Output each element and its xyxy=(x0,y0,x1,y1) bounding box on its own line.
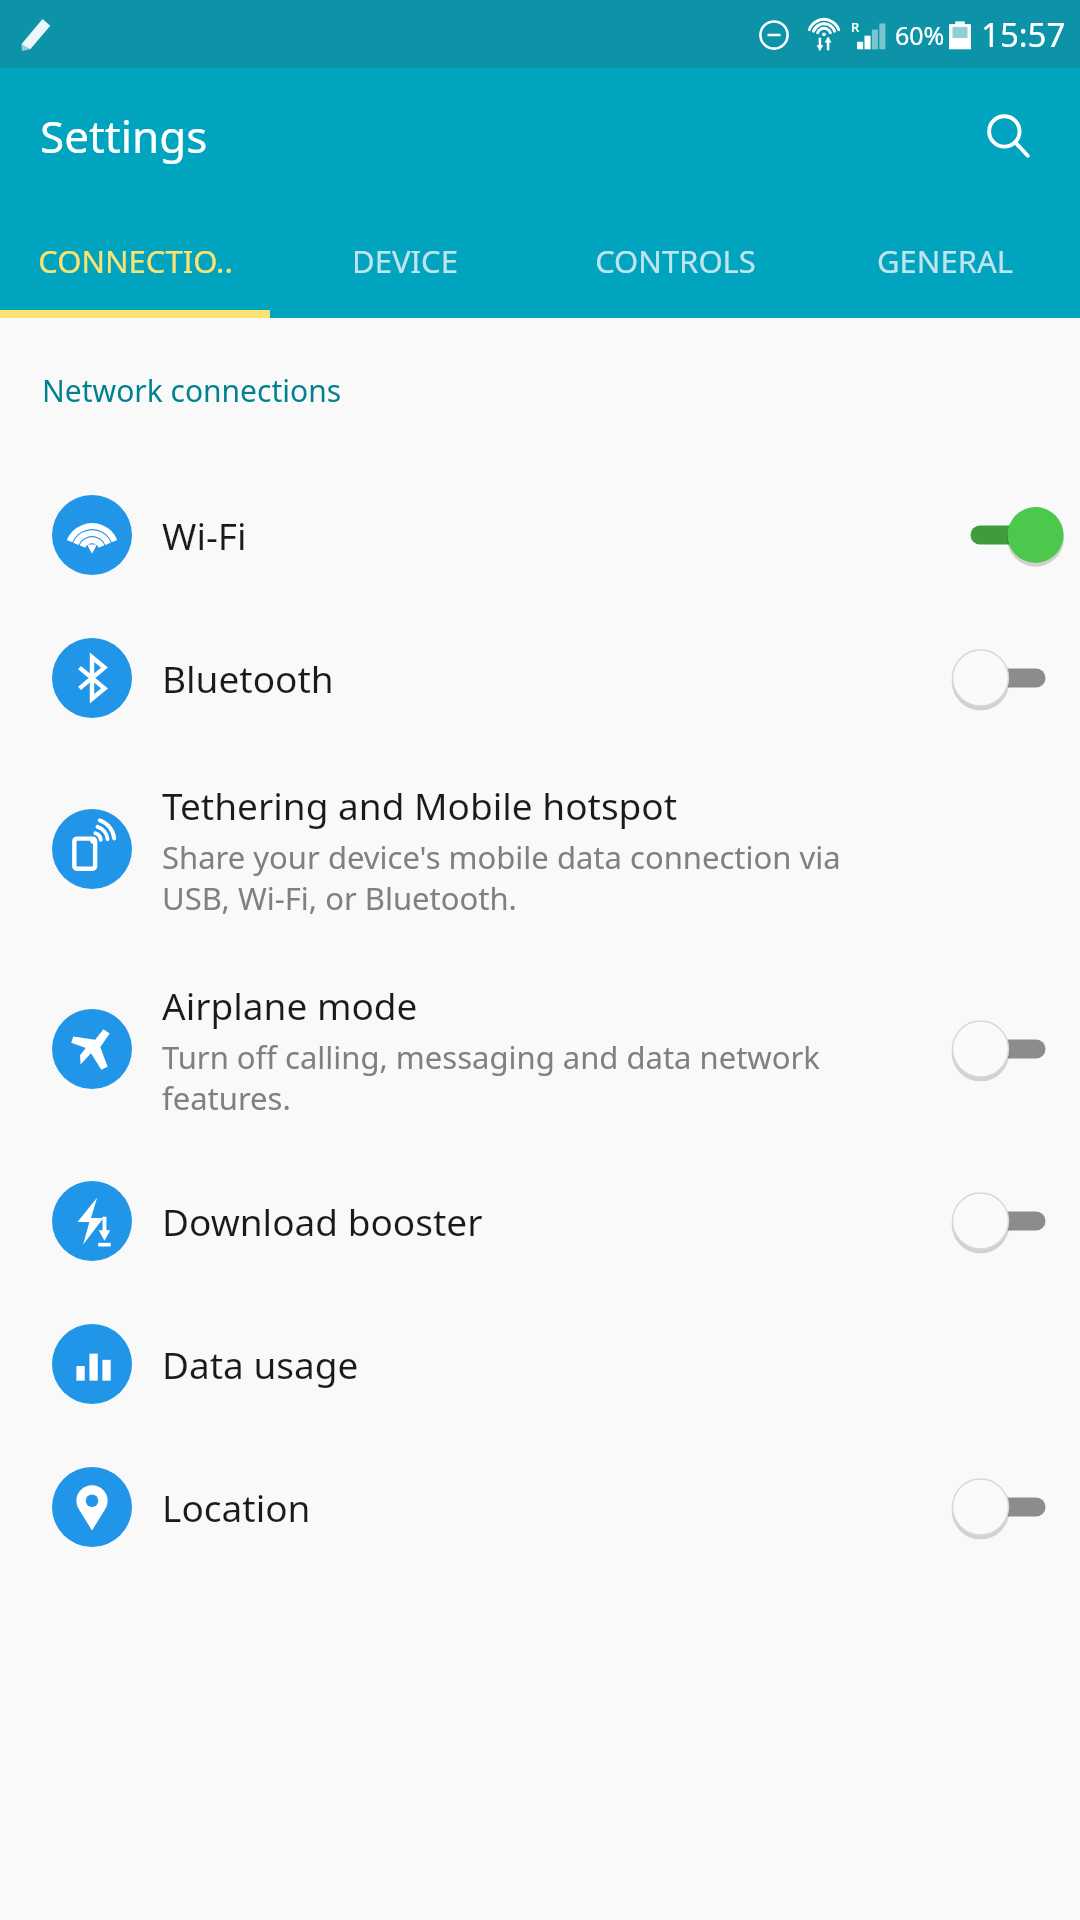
staticText: Settings xyxy=(40,106,208,166)
staticText: Location xyxy=(162,1482,311,1532)
button[interactable]: Location xyxy=(0,1435,1080,1578)
button[interactable]: Search xyxy=(966,94,1050,178)
button[interactable]: Download booster xyxy=(0,1149,1080,1292)
button[interactable]: Bluetooth switch xyxy=(930,623,1080,733)
staticText: Network connections xyxy=(42,370,342,411)
staticText: Tethering and Mobile hotspot xyxy=(162,780,678,830)
staticText: GENERAL xyxy=(877,240,1013,282)
staticText: 60% xyxy=(895,18,945,52)
staticText: CONNECTIO.. xyxy=(38,240,233,282)
button[interactable]: Location switch xyxy=(930,1452,1080,1562)
staticText: Airplane mode xyxy=(162,980,418,1030)
button[interactable]: CONNECTIO.. xyxy=(0,203,270,318)
button[interactable]: Wi-Fi switch xyxy=(930,480,1080,590)
staticText: Bluetooth xyxy=(162,653,334,703)
button[interactable]: Airplane mode switch xyxy=(930,994,1080,1104)
staticText: Download booster xyxy=(162,1196,483,1246)
staticText: DEVICE xyxy=(352,240,458,282)
staticText: 15:57 xyxy=(981,12,1066,57)
staticText: Share your device's mobile data connecti… xyxy=(162,836,908,919)
staticText: Turn off calling, messaging and data net… xyxy=(162,1036,908,1119)
button[interactable]: Tethering and Mobile hotspot xyxy=(0,749,1080,949)
button[interactable]: Bluetooth xyxy=(0,606,1080,749)
staticText: Wi-Fi xyxy=(162,510,247,560)
button[interactable]: Wi-Fi xyxy=(0,463,1080,606)
button[interactable]: CONTROLS xyxy=(540,203,810,318)
button[interactable]: DEVICE xyxy=(270,203,540,318)
staticText: CONTROLS xyxy=(595,240,756,282)
button[interactable]: Download booster switch xyxy=(930,1166,1080,1276)
button[interactable]: Data usage xyxy=(0,1292,1080,1435)
staticText: Data usage xyxy=(162,1339,359,1389)
staticText: R xyxy=(851,18,860,36)
button[interactable]: Airplane mode xyxy=(0,949,1080,1149)
button[interactable]: GENERAL xyxy=(810,203,1080,318)
